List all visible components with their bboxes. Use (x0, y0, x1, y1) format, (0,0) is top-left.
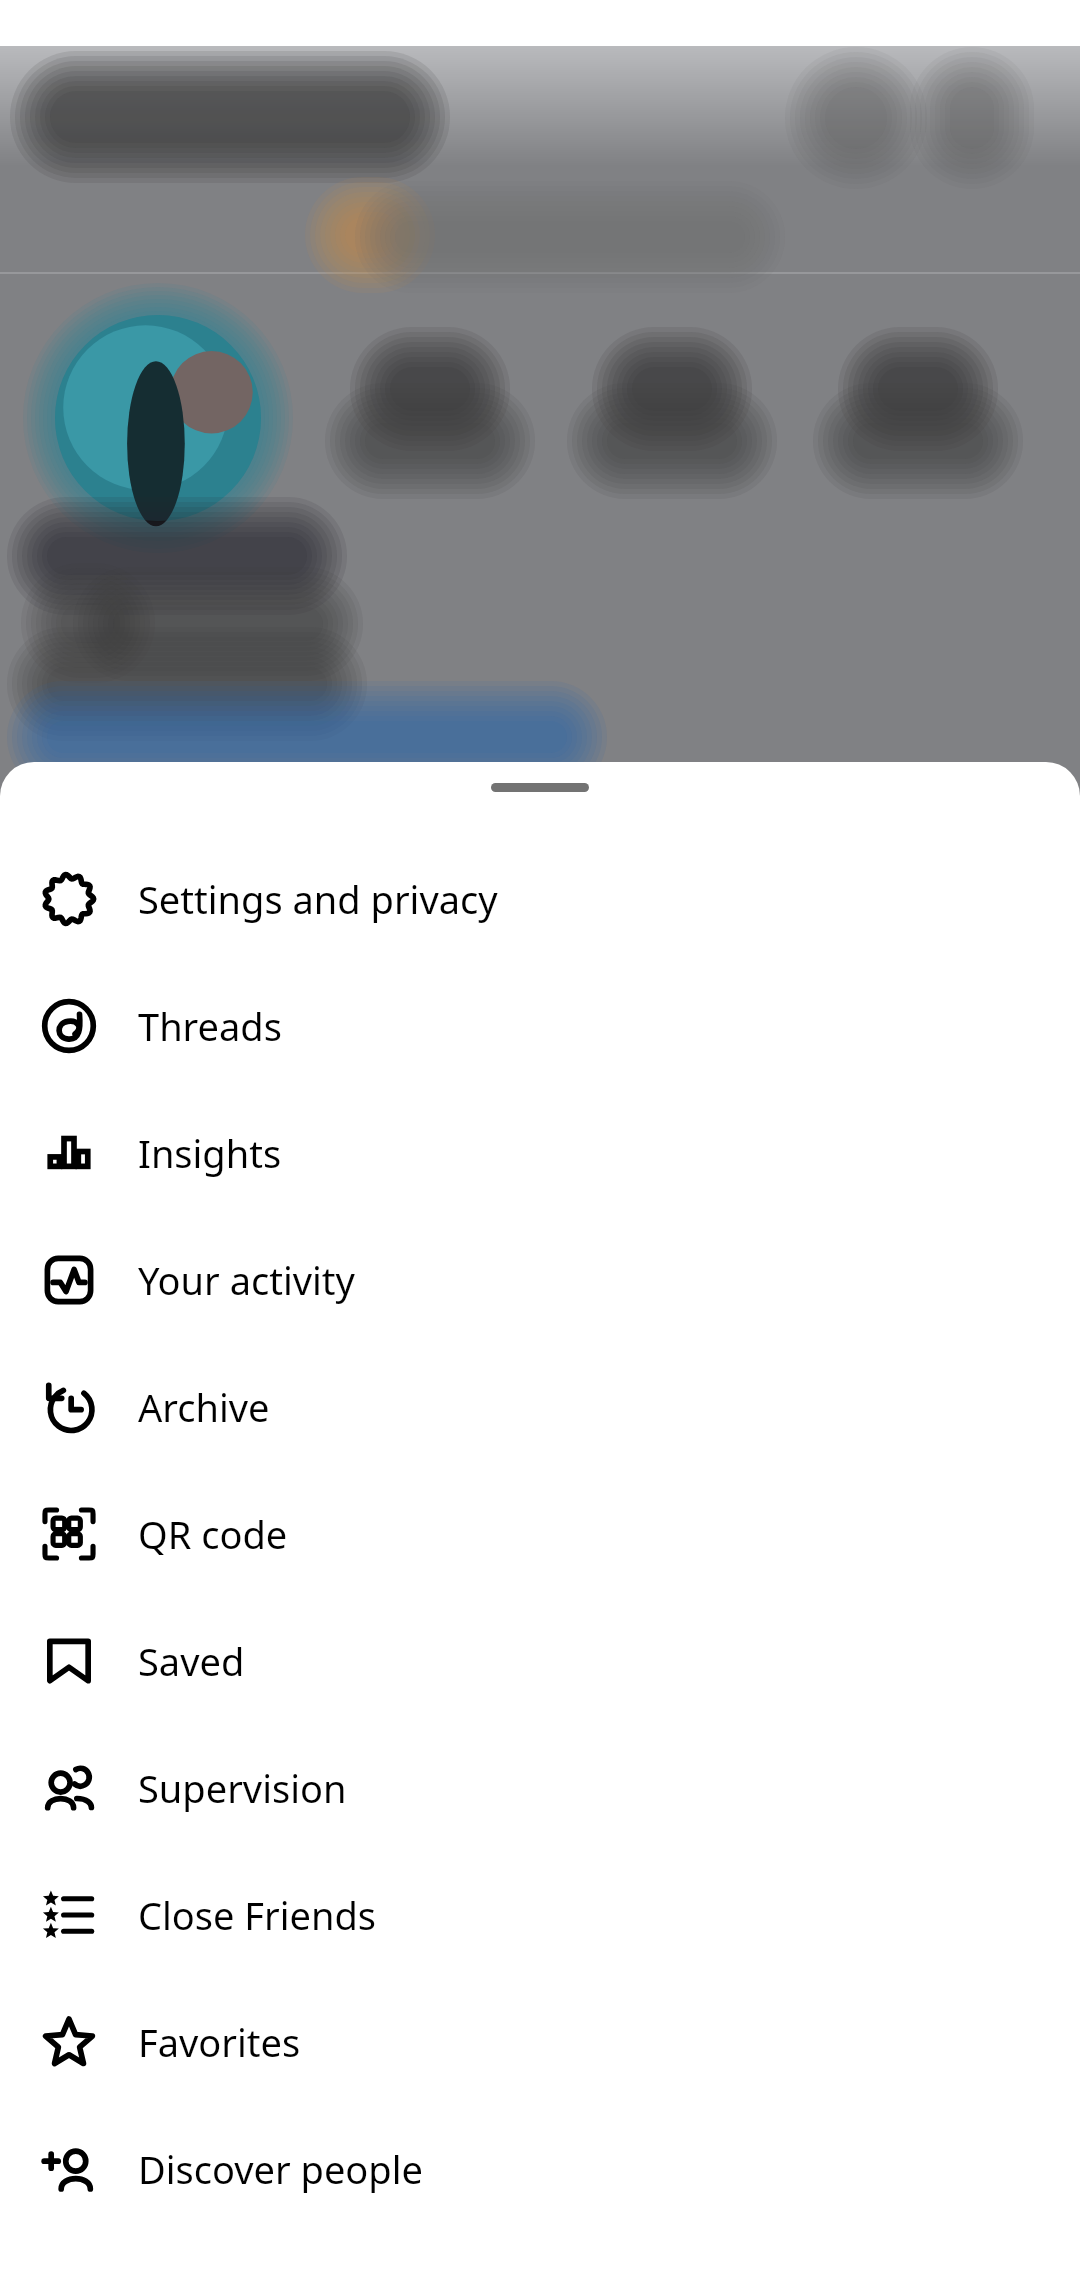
staticText: Insights (138, 1127, 282, 1179)
button[interactable]: Your activity (0, 1216, 1080, 1343)
staticText: QR code (138, 1508, 288, 1560)
staticText: Supervision (138, 1762, 347, 1814)
staticText: Discover people (138, 2143, 423, 2195)
staticText: Close Friends (138, 1889, 377, 1941)
button[interactable]: Saved (0, 1597, 1080, 1724)
button[interactable]: Settings and privacy (0, 835, 1080, 962)
button[interactable]: Close Friends (0, 1851, 1080, 1978)
button[interactable]: Discover people (0, 2105, 1080, 2232)
staticText: Settings and privacy (138, 873, 498, 925)
staticText: Archive (138, 1381, 270, 1433)
button[interactable]: Insights (0, 1089, 1080, 1216)
button[interactable]: Threads (0, 962, 1080, 1089)
button[interactable]: Archive (0, 1343, 1080, 1470)
button[interactable]: Favorites (0, 1978, 1080, 2105)
staticText: Your activity (138, 1254, 355, 1306)
button[interactable]: Supervision (0, 1724, 1080, 1851)
staticText: Saved (138, 1635, 245, 1687)
staticText: Favorites (138, 2016, 301, 2068)
staticText: Threads (138, 1000, 282, 1052)
button[interactable]: QR code (0, 1470, 1080, 1597)
